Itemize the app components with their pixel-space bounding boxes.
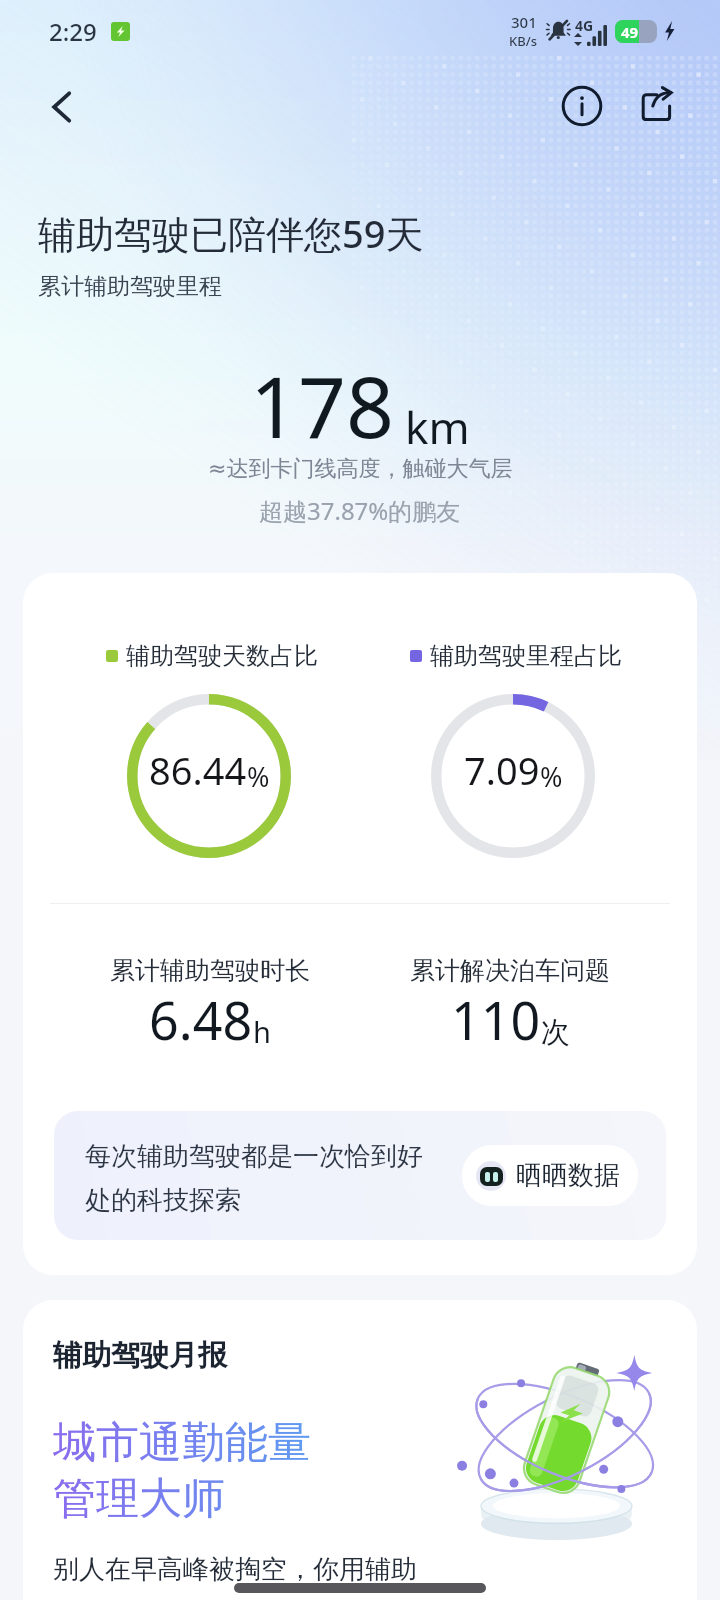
staticText: 累计辅助驾驶里程 [38,272,222,301]
staticText: 累计解决泊车问题 [410,955,610,986]
staticText: 辅助驾驶已陪伴您59天 [38,207,424,259]
staticText: 辅助驾驶里程占比 [430,641,622,671]
staticText: ≈达到卡门线高度，触碰大气层 [208,455,513,483]
staticText: 累计辅助驾驶时长 [110,955,310,986]
button[interactable]: Back [33,78,91,136]
staticText: 晒晒数据 [516,1159,620,1192]
staticText: 86.44 [149,744,247,796]
staticText: km [405,397,470,457]
staticText: KB/s [509,32,538,50]
staticText: 管理大师 [53,1472,225,1526]
staticText: % [540,758,563,795]
staticText: 处的科技探索 [85,1184,241,1217]
button[interactable]: 晒晒数据 [462,1145,638,1206]
staticText: 6.48 [149,984,253,1055]
staticText: 178 [250,348,395,462]
staticText: 超越37.87%的鹏友 [259,494,461,527]
button[interactable]: Share [628,78,684,134]
staticText: h [253,1012,271,1051]
staticText: 2:29 [49,15,97,48]
staticText: 别人在早高峰被掏空，你用辅助 [53,1553,417,1586]
staticText: % [247,758,270,795]
staticText: 49 [621,22,639,42]
staticText: 4G [575,16,594,35]
button[interactable]: Info [554,78,610,134]
staticText: 辅助驾驶月报 [53,1337,227,1374]
staticText: 110 [451,984,541,1055]
staticText: 7.09 [464,744,540,796]
staticText: 辅助驾驶天数占比 [126,641,318,671]
staticText: 301 [511,12,537,32]
staticText: 每次辅助驾驶都是一次恰到好 [85,1140,423,1173]
staticText: 城市通勤能量 [53,1416,311,1470]
staticText: 次 [541,1014,570,1051]
